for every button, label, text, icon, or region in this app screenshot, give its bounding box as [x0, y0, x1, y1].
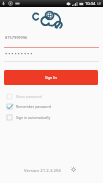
staticText: Show password	[16, 94, 42, 99]
button[interactable]: Sign In	[4, 70, 98, 85]
staticText: Sign in automatically	[16, 115, 51, 120]
staticText: 8757999996	[5, 35, 28, 40]
staticText: Sign In	[45, 75, 57, 80]
button[interactable]: Settings	[67, 163, 79, 175]
staticText: 10:34	[85, 1, 96, 6]
staticText: •••••••••	[5, 50, 34, 58]
staticText: Version 21.2.3.256	[24, 167, 61, 173]
staticText: AM	[97, 2, 102, 6]
button[interactable]: Show password	[0, 91, 103, 102]
staticText: Remember password	[16, 104, 52, 109]
button[interactable]: Sign in automatically	[0, 112, 103, 123]
button[interactable]: Remember password	[0, 101, 103, 112]
